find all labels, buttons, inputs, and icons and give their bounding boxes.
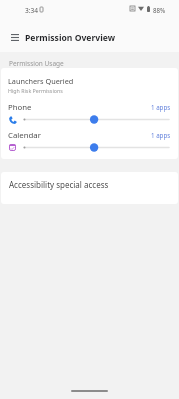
staticText: 1 apps	[151, 131, 171, 139]
staticText: 3:34	[25, 6, 39, 15]
button[interactable]: Calendar	[1, 125, 178, 153]
button[interactable]: Accessibility special access	[1, 172, 178, 204]
staticText: High Risk Permissions	[8, 87, 63, 94]
button[interactable]: Phone	[1, 97, 178, 125]
staticText: Phone	[8, 102, 32, 113]
staticText: Launchers Queried	[8, 76, 74, 86]
staticText: Calendar	[8, 130, 41, 141]
staticText: 1 apps	[151, 103, 171, 111]
staticText: 88%	[153, 6, 166, 14]
staticText: Permission Overview	[25, 32, 116, 44]
staticText: Permission Usage	[9, 59, 64, 68]
button[interactable]: Launchers Queried	[1, 68, 178, 97]
staticText: Accessibility special access	[9, 179, 109, 190]
button[interactable]: Open navigation menu	[1, 22, 28, 52]
